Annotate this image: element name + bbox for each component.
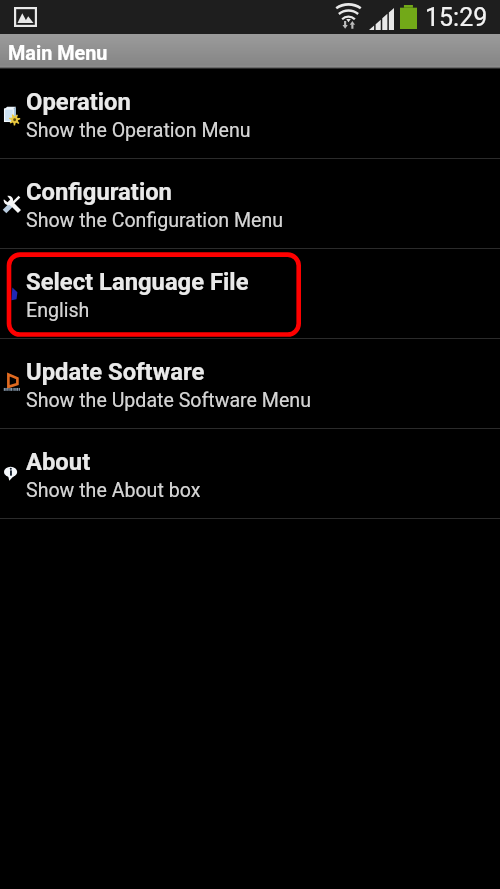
staticText: English xyxy=(26,299,90,322)
button[interactable]: Update Software xyxy=(0,339,500,428)
button[interactable]: About xyxy=(0,429,500,518)
staticText: Show the About box xyxy=(26,479,201,502)
staticText: Show the Configuration Menu xyxy=(26,209,284,232)
staticText: Select Language File xyxy=(26,268,249,296)
staticText: Update Software xyxy=(26,358,205,386)
staticText: Show the Operation Menu xyxy=(26,119,251,142)
staticText: Configuration xyxy=(26,178,172,206)
staticText: Operation xyxy=(26,88,131,116)
staticText: Main Menu xyxy=(8,42,108,65)
button[interactable]: Operation xyxy=(0,69,500,158)
staticText: 15:29 xyxy=(425,3,488,32)
button[interactable]: Select Language File xyxy=(0,249,500,338)
button[interactable]: Configuration xyxy=(0,159,500,248)
staticText: About xyxy=(26,448,91,476)
staticText: Show the Update Software Menu xyxy=(26,389,311,412)
